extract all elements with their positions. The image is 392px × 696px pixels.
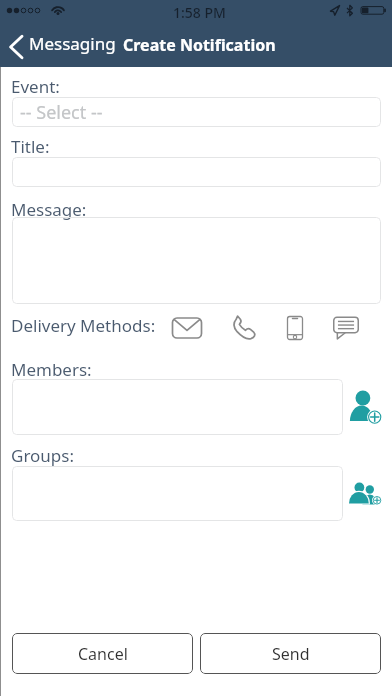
button[interactable]: Phone: [228, 312, 260, 344]
button[interactable]: Back to Messaging: [8, 26, 126, 67]
button[interactable]: Text message: [331, 312, 361, 344]
staticText: Members:: [11, 358, 92, 381]
staticText: -- Select --: [20, 100, 103, 125]
button[interactable]: [12, 379, 343, 435]
staticText: Groups:: [11, 444, 75, 467]
button[interactable]: Send: [200, 633, 381, 674]
button[interactable]: Cancel: [12, 633, 193, 674]
staticText: Delivery Methods:: [11, 314, 156, 337]
staticText: Message:: [11, 198, 87, 221]
staticText: Title:: [11, 135, 50, 158]
staticText: Messaging: [29, 32, 116, 55]
staticText: Cancel: [78, 643, 128, 665]
button[interactable]: Email: [168, 312, 206, 344]
button[interactable]: Add member: [347, 388, 383, 424]
staticText: Create Notification: [123, 34, 276, 56]
staticText: Send: [272, 643, 310, 665]
button[interactable]: [12, 217, 381, 304]
staticText: 1:58 PM: [173, 3, 226, 22]
button[interactable]: Mobile: [285, 312, 305, 344]
button[interactable]: [12, 466, 343, 521]
button[interactable]: -- Select --: [12, 97, 381, 127]
button[interactable]: Add group: [347, 475, 383, 511]
button[interactable]: [12, 157, 381, 187]
staticText: Event:: [11, 75, 60, 98]
